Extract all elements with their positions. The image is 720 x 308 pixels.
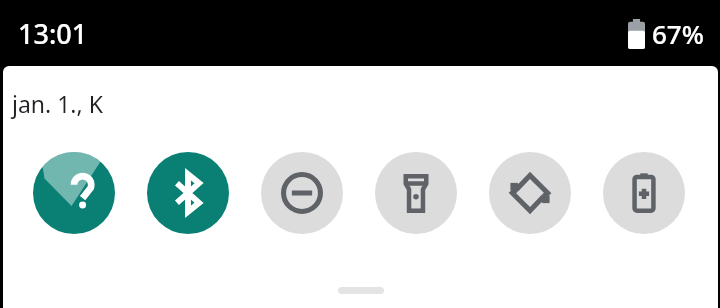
button[interactable]: Auto-rotate — [489, 152, 571, 234]
button[interactable]: Bluetooth — [147, 152, 229, 234]
button[interactable]: Flashlight — [375, 152, 457, 234]
staticText: jan. 1., K — [12, 88, 103, 119]
button[interactable]: Wi-Fi — [33, 152, 115, 234]
button[interactable]: Do Not Disturb — [261, 152, 343, 234]
button[interactable]: Battery Saver — [603, 152, 685, 234]
staticText: 67% — [652, 16, 704, 51]
staticText: 13:01 — [18, 15, 88, 52]
